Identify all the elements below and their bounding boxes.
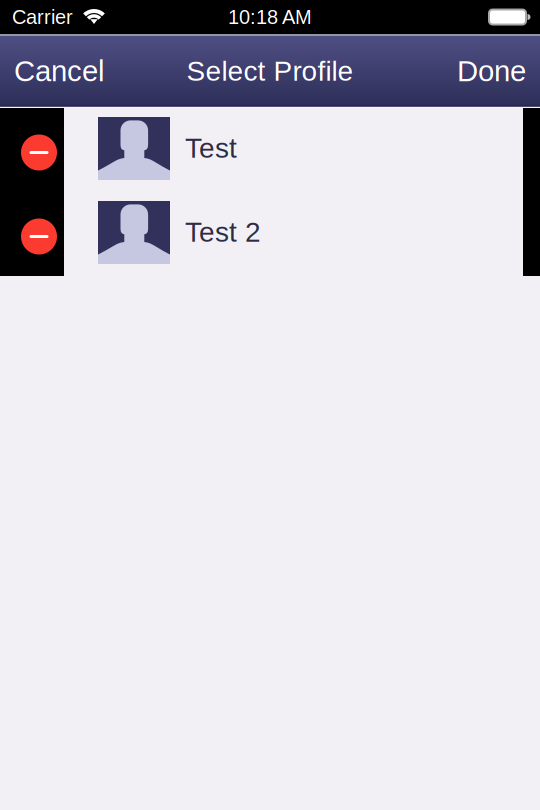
staticText: Select Profile [186,55,353,87]
staticText: 10:18 AM [228,6,312,28]
staticText: Carrier [12,6,73,28]
staticText: Test 2 [185,216,261,248]
staticText: Cancel [14,55,105,87]
staticText: Test [185,132,237,164]
staticText: Done [457,55,526,87]
button[interactable]: Delete [0,192,64,276]
button[interactable]: Test [64,108,523,192]
button[interactable]: Cancel [0,34,119,108]
button[interactable]: Delete [0,108,64,192]
button[interactable]: Test 2 [64,192,523,276]
button[interactable]: Done [443,34,540,108]
